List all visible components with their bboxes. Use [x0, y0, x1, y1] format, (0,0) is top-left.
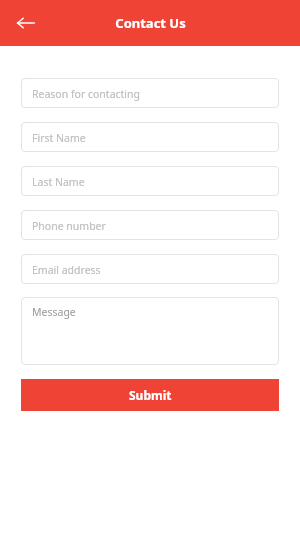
staticText: Contact Us	[115, 14, 186, 32]
staticText: Reason for contacting	[32, 87, 141, 101]
button[interactable]: Back	[12, 9, 40, 37]
staticText: Last Name	[32, 175, 85, 189]
button[interactable]: First Name	[21, 122, 279, 152]
button[interactable]: Submit	[21, 379, 279, 411]
button[interactable]: Reason for contacting	[21, 78, 279, 108]
staticText: Phone number	[32, 219, 106, 233]
button[interactable]: Email address	[21, 254, 279, 284]
staticText: Email address	[32, 263, 101, 277]
button[interactable]: Phone number	[21, 210, 279, 240]
button[interactable]: Last Name	[21, 166, 279, 196]
staticText: First Name	[32, 131, 86, 145]
staticText: Message	[32, 305, 76, 319]
button[interactable]: Message	[21, 297, 279, 365]
staticText: Submit	[129, 387, 172, 403]
